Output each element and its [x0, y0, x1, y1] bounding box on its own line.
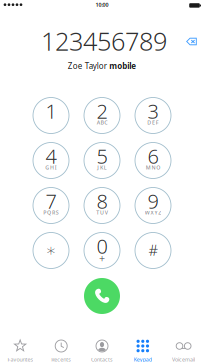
- staticText: 10:00: [95, 1, 108, 8]
- staticText: WXYZ: [145, 209, 161, 216]
- button[interactable]: 4: [33, 142, 69, 178]
- button[interactable]: 0: [84, 232, 120, 268]
- button[interactable]: 6: [135, 142, 171, 178]
- button[interactable]: 2: [84, 97, 120, 133]
- staticText: Keypad: [134, 356, 152, 362]
- staticText: ABC: [97, 119, 107, 126]
- button[interactable]: ∗: [33, 232, 69, 268]
- staticText: Zoe Taylor: [68, 61, 107, 71]
- staticText: ∗: [45, 240, 56, 260]
- button[interactable]: Delete: [186, 37, 197, 45]
- staticText: 8: [96, 188, 107, 214]
- staticText: #: [148, 240, 157, 260]
- staticText: 0: [96, 233, 107, 259]
- staticText: MNO: [146, 164, 160, 171]
- staticText: Contacts: [91, 356, 113, 362]
- staticText: 9: [147, 188, 158, 214]
- staticText: Voicemail: [172, 356, 195, 362]
- staticText: 7: [45, 188, 56, 214]
- staticText: 123456789: [41, 24, 167, 58]
- staticText: 2: [96, 98, 107, 124]
- staticText: TUV: [96, 209, 108, 216]
- button[interactable]: 7: [33, 187, 69, 223]
- staticText: 5: [96, 143, 107, 169]
- staticText: mobile: [109, 61, 136, 71]
- staticText: Favourites: [7, 356, 33, 362]
- staticText: DEF: [147, 119, 159, 126]
- staticText: JKL: [97, 164, 107, 171]
- button[interactable]: 3: [135, 97, 171, 133]
- button[interactable]: Call: [84, 278, 120, 314]
- button[interactable]: Voicemail: [163, 338, 204, 362]
- button[interactable]: 1: [33, 97, 69, 133]
- staticText: Recents: [51, 356, 71, 362]
- button[interactable]: Recents: [41, 338, 82, 362]
- staticText: 3: [147, 98, 158, 124]
- staticText: 1: [45, 98, 56, 124]
- button[interactable]: 9: [135, 187, 171, 223]
- button[interactable]: #: [135, 232, 171, 268]
- staticText: GHI: [45, 164, 57, 171]
- staticText: 6: [147, 143, 158, 169]
- button[interactable]: 5: [84, 142, 120, 178]
- button[interactable]: Contacts: [82, 338, 122, 362]
- button[interactable]: Keypad: [122, 338, 163, 362]
- staticText: +: [99, 251, 105, 265]
- staticText: 4: [45, 143, 56, 169]
- button[interactable]: 8: [84, 187, 120, 223]
- button[interactable]: Favourites: [0, 338, 41, 362]
- staticText: PQRS: [43, 209, 59, 216]
